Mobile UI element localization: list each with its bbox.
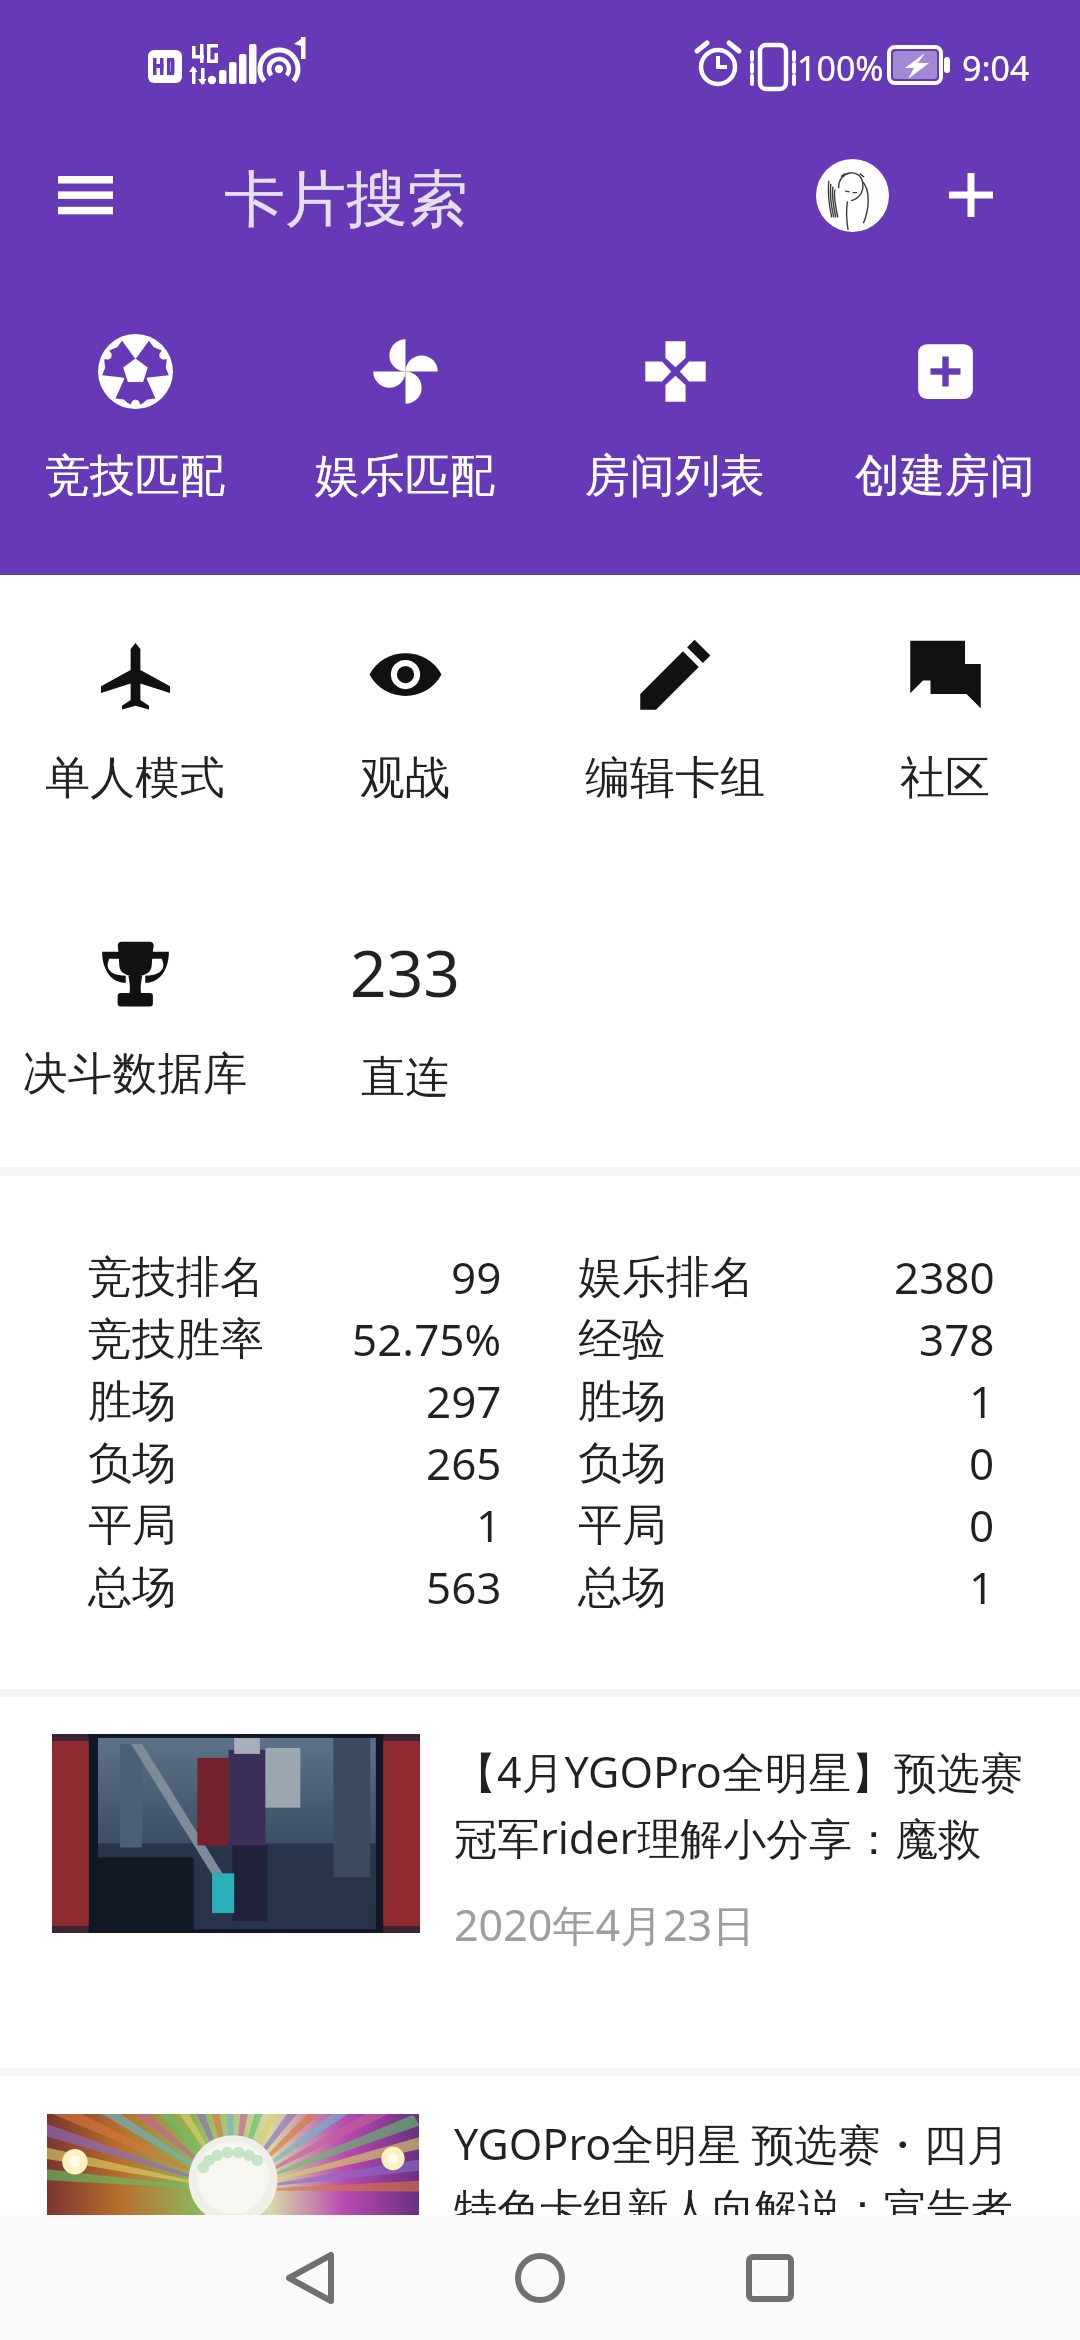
staticText: 总场 bbox=[578, 1560, 666, 1615]
staticText: 1 bbox=[476, 1495, 502, 1555]
staticText: 0 bbox=[969, 1433, 995, 1493]
staticText: 直连 bbox=[270, 1050, 540, 1105]
staticText: 2380 bbox=[894, 1247, 995, 1307]
staticText: 0 bbox=[969, 1495, 995, 1555]
staticText: 99 bbox=[451, 1247, 502, 1307]
staticText: 平局 bbox=[88, 1498, 176, 1553]
staticText: 平局 bbox=[578, 1498, 666, 1553]
button[interactable]: 房间列表 bbox=[540, 320, 810, 535]
staticText: 9:04 bbox=[962, 45, 1030, 91]
staticText: 1 bbox=[969, 1557, 995, 1617]
staticText: 经验 bbox=[578, 1312, 666, 1367]
button[interactable]: Profile bbox=[797, 140, 907, 250]
staticText: 负场 bbox=[88, 1436, 176, 1491]
staticText: 观战 bbox=[270, 750, 540, 807]
staticText: 卡片搜索 bbox=[224, 161, 468, 238]
button[interactable]: 娱乐匹配 bbox=[270, 320, 540, 535]
staticText: 竞技胜率 bbox=[88, 1312, 264, 1367]
staticText: 233 bbox=[270, 929, 540, 1016]
staticText: 100% bbox=[797, 45, 884, 91]
staticText: 创建房间 bbox=[810, 448, 1080, 505]
staticText: 【4月YGOPro全明星】预选赛冠军rider理解小分享：魔救 bbox=[454, 1742, 1034, 1867]
staticText: 1 bbox=[969, 1371, 995, 1431]
staticText: 总场 bbox=[88, 1560, 176, 1615]
button[interactable]: 【4月YGOPro全明星】预选赛冠军rider理解小分享：魔救 bbox=[0, 1695, 1080, 2070]
staticText: 378 bbox=[919, 1309, 995, 1369]
button[interactable]: Menu bbox=[30, 140, 140, 250]
staticText: 社区 bbox=[810, 750, 1080, 807]
staticText: 竞技排名 bbox=[88, 1250, 264, 1305]
button[interactable]: Add bbox=[916, 140, 1026, 250]
button[interactable]: 社区 bbox=[810, 613, 1080, 812]
staticText: 负场 bbox=[578, 1436, 666, 1491]
staticText: 265 bbox=[426, 1433, 502, 1493]
staticText: YGOPro全明星 预选赛・四月 特色卡组新人向解说：宣告者 bbox=[454, 2114, 1054, 2237]
button[interactable]: Recents bbox=[690, 2215, 850, 2340]
staticText: 胜场 bbox=[88, 1374, 176, 1429]
staticText: 胜场 bbox=[578, 1374, 666, 1429]
button[interactable]: 编辑卡组 bbox=[540, 613, 810, 812]
button[interactable]: 233 bbox=[270, 915, 540, 1135]
staticText: 房间列表 bbox=[540, 448, 810, 505]
staticText: 编辑卡组 bbox=[540, 750, 810, 807]
button[interactable]: Back bbox=[229, 2215, 389, 2340]
button[interactable]: Home bbox=[460, 2215, 620, 2340]
staticText: 决斗数据库 bbox=[0, 1046, 270, 1103]
staticText: 单人模式 bbox=[0, 750, 270, 807]
button[interactable]: 观战 bbox=[270, 613, 540, 812]
button[interactable]: 创建房间 bbox=[810, 320, 1080, 535]
button[interactable]: YGOPro全明星 预选赛・四月 特色卡组新人向解说：宣告者 bbox=[0, 2074, 1080, 2340]
staticText: 2020年4月23日 bbox=[454, 1895, 756, 1954]
staticText: 娱乐匹配 bbox=[270, 448, 540, 505]
staticText: 297 bbox=[426, 1371, 502, 1431]
staticText: 娱乐排名 bbox=[578, 1250, 754, 1305]
button[interactable]: 单人模式 bbox=[0, 613, 270, 812]
button[interactable]: 竞技匹配 bbox=[0, 320, 270, 535]
button[interactable]: 决斗数据库 bbox=[0, 910, 270, 1108]
staticText: 52.75% bbox=[352, 1309, 502, 1369]
staticText: 563 bbox=[426, 1557, 502, 1617]
staticText: 竞技匹配 bbox=[0, 448, 270, 505]
